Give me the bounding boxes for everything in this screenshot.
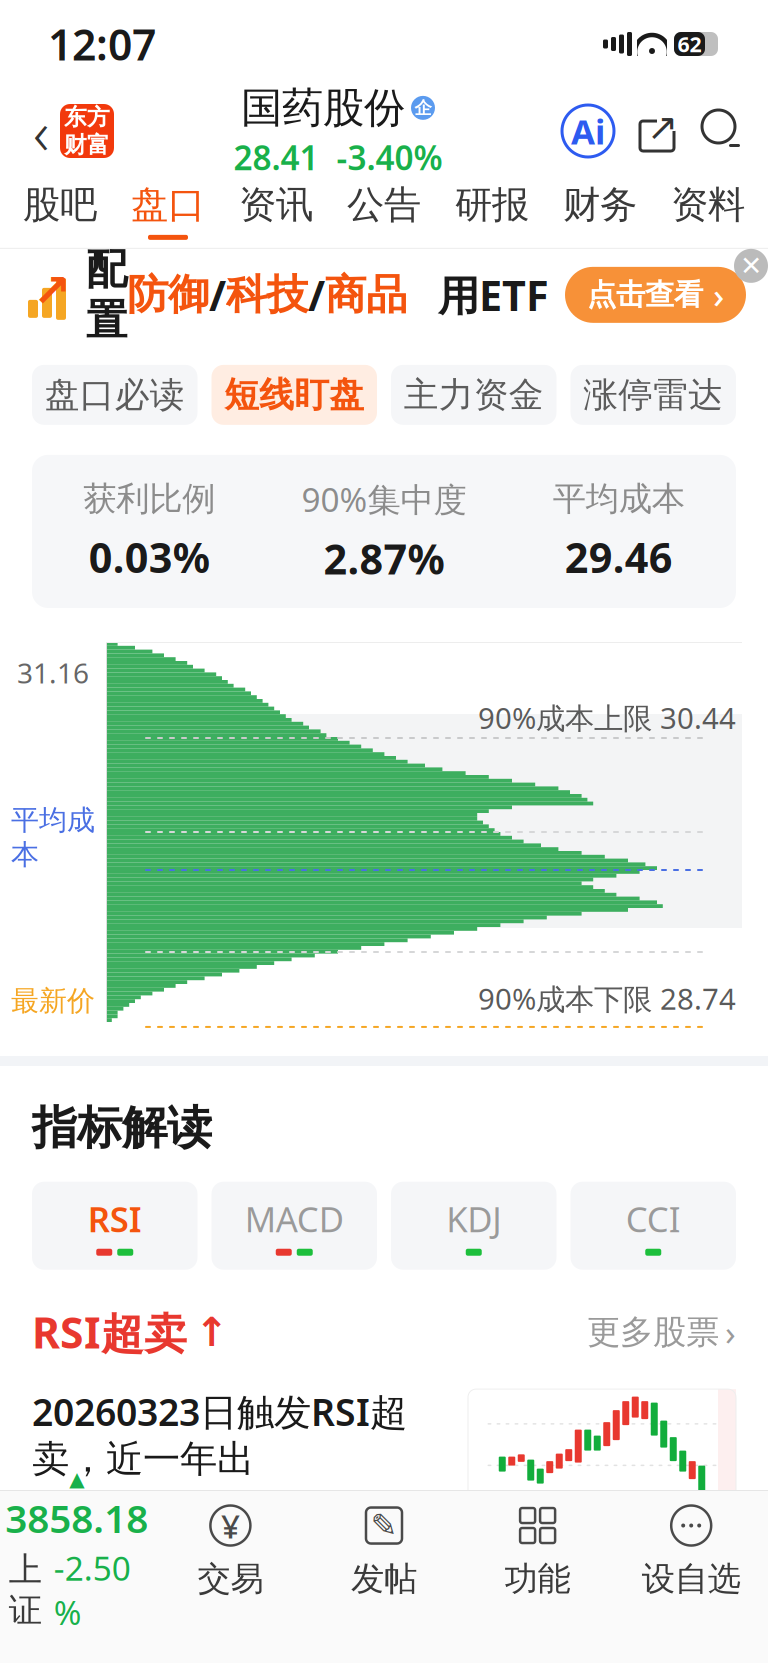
staticText: RSI <box>88 1196 142 1242</box>
staticText: MACD <box>245 1196 344 1242</box>
staticText: 2.87% <box>323 531 444 586</box>
button[interactable]: 资讯 <box>222 174 330 248</box>
staticText: 公告 <box>347 182 421 228</box>
staticText: ▲ <box>69 1468 84 1490</box>
button[interactable]: 短线盯盘 <box>211 365 377 425</box>
staticText: 平均成本 <box>553 478 685 519</box>
staticText: 62 <box>677 30 701 58</box>
staticText: 28.41 -3.40% <box>233 135 442 180</box>
staticText: ¥ <box>221 1503 240 1548</box>
button[interactable]: ↗ <box>0 249 768 341</box>
staticText: 点击查看 <box>587 277 703 313</box>
staticText: 财富 <box>64 131 110 159</box>
staticText: 短线盯盘 <box>224 374 364 416</box>
staticText: 研报 <box>455 182 529 228</box>
staticText: 功能 <box>505 1558 571 1599</box>
staticText: 东方 <box>64 103 110 131</box>
button[interactable]: 研报 <box>438 174 546 248</box>
button[interactable]: Back <box>22 101 60 161</box>
staticText: Ai <box>571 108 605 154</box>
staticText: 资讯 <box>239 182 313 228</box>
button[interactable]: 资料 <box>654 174 762 248</box>
staticText: 现 <box>32 1494 69 1540</box>
staticText: ↗ <box>647 106 678 148</box>
staticText: 商品 <box>325 269 407 320</box>
staticText: 发帖 <box>351 1558 417 1599</box>
button[interactable]: ✎ <box>307 1502 461 1599</box>
staticText: ✕ <box>740 251 762 281</box>
button[interactable]: AI assistant <box>562 105 614 157</box>
staticText: 3858.18 <box>5 1492 148 1544</box>
staticText: 财务 <box>563 182 637 228</box>
button[interactable]: 设自选 <box>614 1502 768 1599</box>
staticText: 涨停雷达 <box>583 374 723 416</box>
staticText: 最新价 <box>11 984 95 1018</box>
staticText: 31.16 <box>17 654 89 691</box>
staticText: 国药股份 <box>241 82 405 133</box>
button[interactable]: 公告 <box>330 174 438 248</box>
staticText: 防御 <box>127 269 209 320</box>
staticText: 盘口必读 <box>45 374 185 416</box>
staticText: RSI超卖 <box>32 1304 187 1361</box>
staticText: 股吧 <box>23 182 97 228</box>
staticText: › <box>713 272 724 318</box>
staticText: 指标解读 <box>32 1100 212 1156</box>
staticText: ↑ <box>195 1309 229 1355</box>
staticText: 3 <box>69 1492 90 1542</box>
button[interactable]: RSI <box>32 1182 197 1270</box>
staticText: 设自选 <box>642 1558 741 1599</box>
staticText: CCI <box>626 1196 681 1242</box>
staticText: 0.03% <box>89 529 210 584</box>
staticText: 29.46 <box>565 529 673 584</box>
staticText: 20260323日触发RSI超卖，近一年出 <box>32 1387 407 1482</box>
staticText: 交易 <box>197 1558 263 1599</box>
button[interactable]: 涨停雷达 <box>570 365 736 425</box>
button[interactable]: Search <box>700 108 746 154</box>
button[interactable]: 股吧 <box>6 174 114 248</box>
staticText: / <box>308 267 325 322</box>
staticText: 主力资金 <box>404 374 544 416</box>
button[interactable]: KDJ <box>391 1182 556 1270</box>
staticText: › <box>725 1309 736 1355</box>
staticText: 获利比例 <box>83 478 215 519</box>
staticText: 90%成本下限 28.74 <box>478 979 736 1018</box>
staticText: 90%成本上限 30.44 <box>478 698 736 737</box>
button[interactable]: 财务 <box>546 174 654 248</box>
staticText: ‹ <box>33 90 49 172</box>
staticText: ✎ <box>370 1507 397 1544</box>
staticText: 企 <box>414 97 431 118</box>
staticText: 平均成本 <box>11 803 95 872</box>
staticText: / <box>209 267 226 322</box>
button[interactable]: 盘口 <box>114 174 222 248</box>
button[interactable]: ¥ <box>154 1502 307 1599</box>
staticText: 科技 <box>226 269 308 320</box>
staticText: 资料 <box>671 182 745 228</box>
button[interactable]: MACD <box>211 1182 377 1270</box>
button[interactable]: 功能 <box>461 1502 614 1599</box>
button[interactable]: Share <box>634 108 680 154</box>
staticText: 90%集中度 <box>301 477 466 521</box>
staticText: -2.50% <box>54 1546 131 1634</box>
staticText: 用ETF <box>438 267 549 322</box>
staticText: 更多股票 <box>587 1312 719 1353</box>
button[interactable]: 更多股票 <box>587 1309 736 1355</box>
button[interactable]: 主力资金 <box>391 365 556 425</box>
staticText: 次形态 <box>90 1494 201 1540</box>
staticText: KDJ <box>446 1196 501 1242</box>
button[interactable]: East Money Home <box>60 104 114 158</box>
staticText: 次日上涨概率 <box>60 1598 225 1663</box>
button[interactable]: CCI <box>570 1182 736 1270</box>
button[interactable]: Close advertisement <box>734 249 768 283</box>
button[interactable]: 盘口必读 <box>32 365 197 425</box>
staticText: ↗ <box>33 265 71 317</box>
button[interactable]: ▲ <box>0 1468 154 1634</box>
staticText: 12:07 <box>48 16 156 72</box>
staticText: 盘口 <box>131 182 205 228</box>
staticText: 配置 <box>86 244 127 346</box>
staticText: 上证 <box>9 1549 42 1631</box>
